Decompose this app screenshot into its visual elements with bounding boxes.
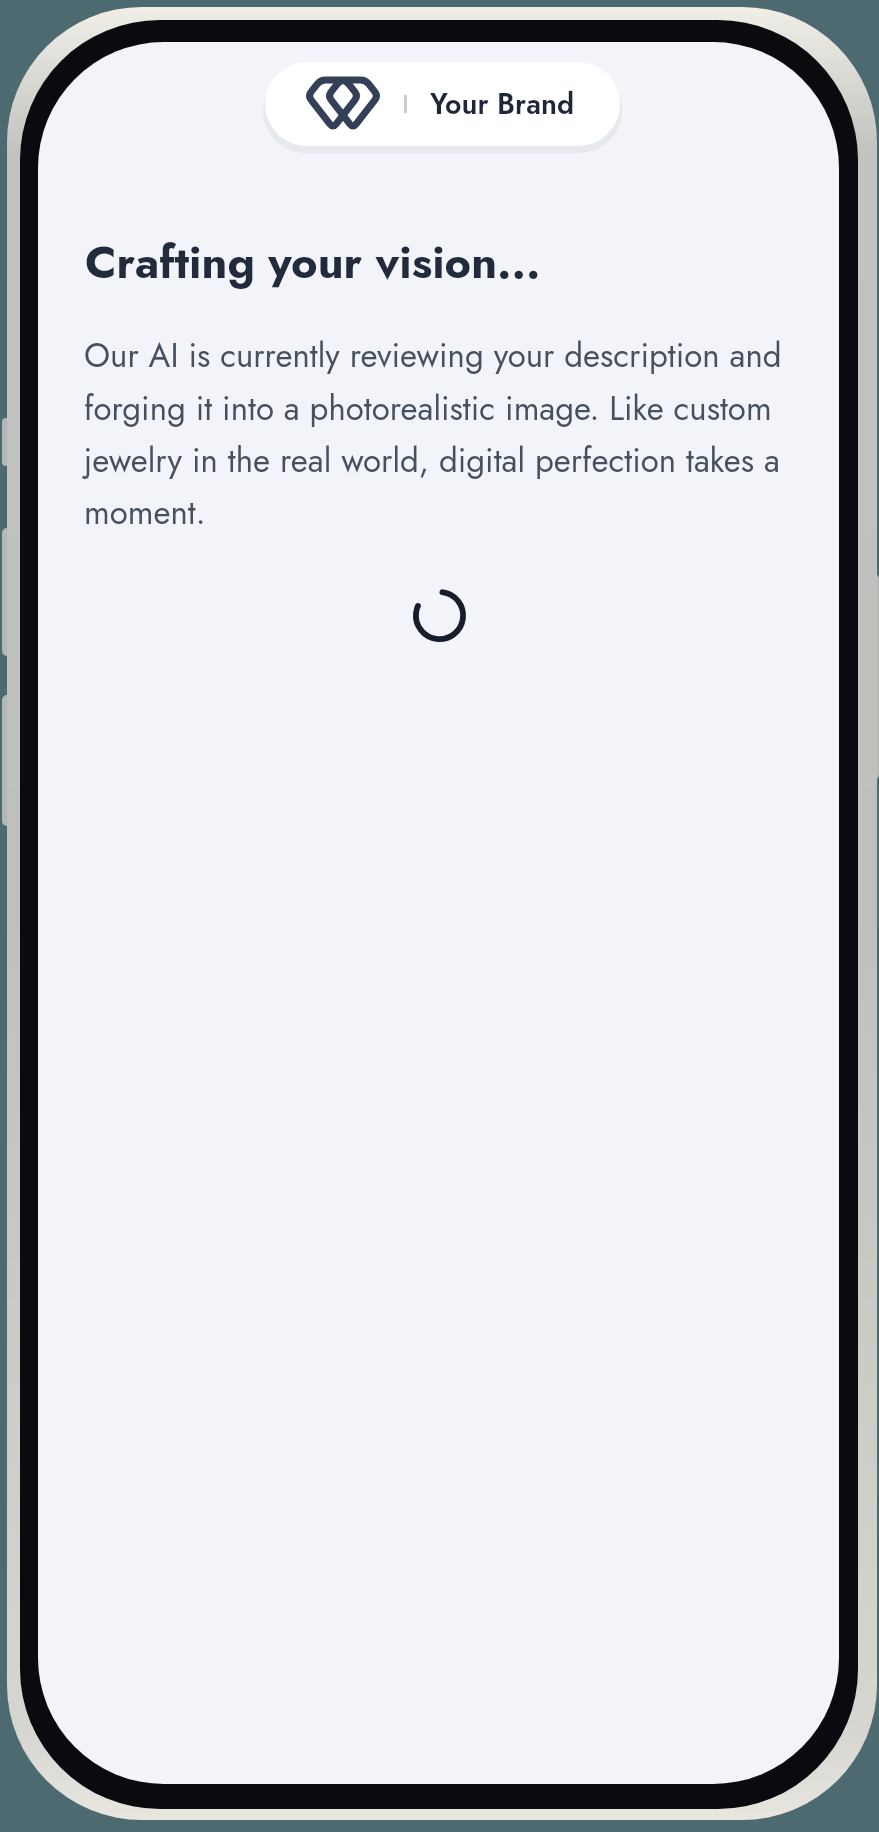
staticText: Our AI is currently reviewing your descr… <box>84 332 782 536</box>
button[interactable]: Your Brand <box>265 62 620 146</box>
staticText: Crafting your vision... <box>85 230 541 295</box>
staticText: Your Brand <box>430 84 575 125</box>
